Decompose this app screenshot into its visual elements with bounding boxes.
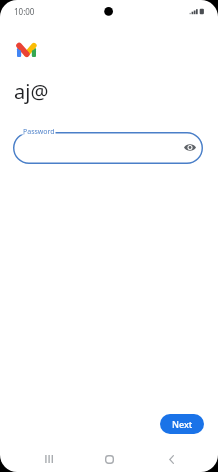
button[interactable]: Recents (33, 448, 65, 470)
button[interactable]: Back (155, 448, 187, 470)
button[interactable]: Show password (182, 139, 198, 155)
staticText: aj@ (14, 78, 49, 105)
staticText: Password (23, 127, 55, 137)
staticText: Next (172, 418, 193, 430)
button[interactable]: Home (93, 448, 125, 470)
button[interactable]: Next (160, 414, 204, 434)
button[interactable]: Password (13, 132, 203, 164)
staticText: 10:00 (14, 6, 35, 17)
